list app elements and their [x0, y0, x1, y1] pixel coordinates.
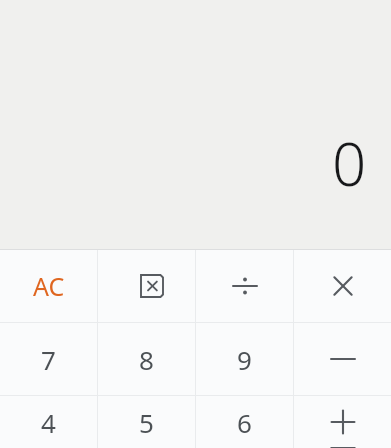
button[interactable]: Plus — [294, 396, 391, 448]
staticText: 9 — [237, 342, 252, 377]
button[interactable]: 9 — [196, 323, 293, 395]
button[interactable]: AC — [0, 250, 97, 322]
button[interactable]: Minus — [294, 323, 391, 395]
button[interactable]: Backspace — [98, 250, 195, 322]
button[interactable]: Divide — [196, 250, 293, 322]
button[interactable]: 5 — [98, 396, 195, 448]
button[interactable]: 8 — [98, 323, 195, 395]
staticText: 6 — [237, 405, 252, 440]
staticText: AC — [33, 269, 65, 303]
button[interactable]: 6 — [196, 396, 293, 448]
staticText: 0 — [332, 122, 367, 204]
staticText: 7 — [41, 342, 56, 377]
button[interactable]: 7 — [0, 323, 97, 395]
staticText: 5 — [139, 405, 154, 440]
staticText: 4 — [41, 405, 56, 440]
button[interactable]: Multiply — [294, 250, 391, 322]
button[interactable]: 4 — [0, 396, 97, 448]
staticText: 8 — [139, 342, 154, 377]
